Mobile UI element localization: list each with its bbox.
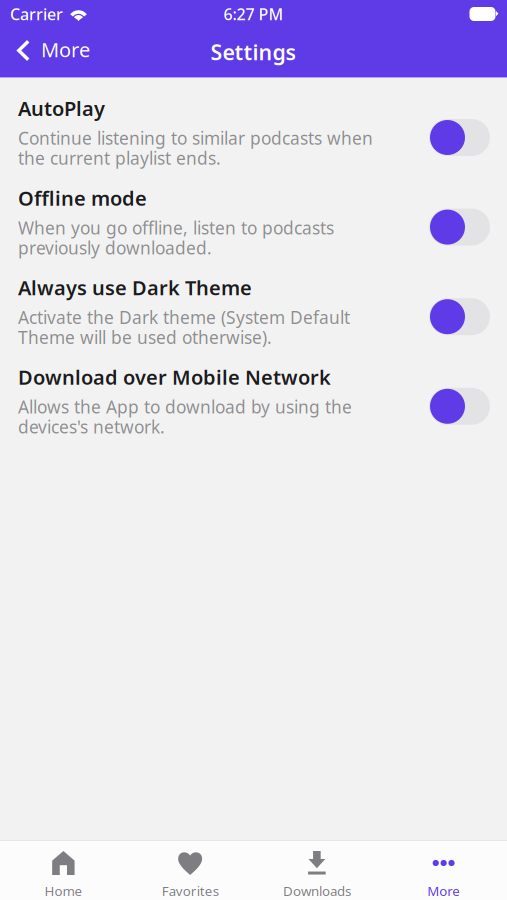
staticText: More [41, 36, 90, 63]
button[interactable]: AutoPlay [18, 95, 374, 170]
button[interactable]: Always use Dark Theme [429, 298, 490, 335]
button[interactable]: Download over Mobile Network [18, 364, 358, 438]
staticText: Carrier [10, 3, 63, 25]
staticText: Activate the Dark theme (System Default … [18, 306, 350, 349]
button[interactable]: More [380, 841, 507, 900]
staticText: When you go offline, listen to podcasts … [18, 216, 334, 259]
staticText: Home [44, 882, 82, 900]
staticText: Continue listening to similar podcasts w… [18, 127, 373, 170]
button[interactable]: Download over Mobile Network [429, 388, 490, 425]
staticText: Favorites [162, 882, 219, 900]
staticText: Settings [210, 38, 296, 66]
staticText: Allows the App to download by using the … [18, 395, 352, 438]
staticText: AutoPlay [18, 95, 105, 122]
button[interactable]: More [0, 30, 104, 70]
button[interactable]: Always use Dark Theme [18, 274, 358, 349]
staticText: Offline mode [18, 185, 147, 211]
staticText: 6:27 PM [223, 3, 283, 25]
staticText: Downloads [283, 882, 351, 900]
staticText: More [427, 882, 460, 900]
staticText: Always use Dark Theme [18, 274, 252, 301]
button[interactable]: AutoPlay [429, 119, 490, 156]
button[interactable]: Downloads [253, 841, 380, 900]
button[interactable]: Offline mode [18, 185, 338, 259]
staticText: Download over Mobile Network [18, 364, 331, 390]
button[interactable]: Home [0, 841, 127, 900]
button[interactable]: Offline mode [429, 209, 490, 246]
button[interactable]: Favorites [127, 841, 254, 900]
